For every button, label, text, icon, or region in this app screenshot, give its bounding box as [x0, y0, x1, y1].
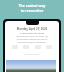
staticText: eiusmod tempor incididunt — [5, 41, 59, 44]
staticText: consectetur adipiscing sed do — [5, 38, 59, 41]
staticText: Lorem ipsum dolor sit amet, elit — [5, 35, 59, 38]
staticText: Recently added — [5, 53, 59, 56]
staticText: to remember — [0, 8, 64, 13]
staticText: 4 reminders for today — [5, 31, 59, 34]
staticText: Monday, April 29, 2024 — [5, 27, 59, 31]
staticText: The easiest way — [0, 3, 64, 8]
